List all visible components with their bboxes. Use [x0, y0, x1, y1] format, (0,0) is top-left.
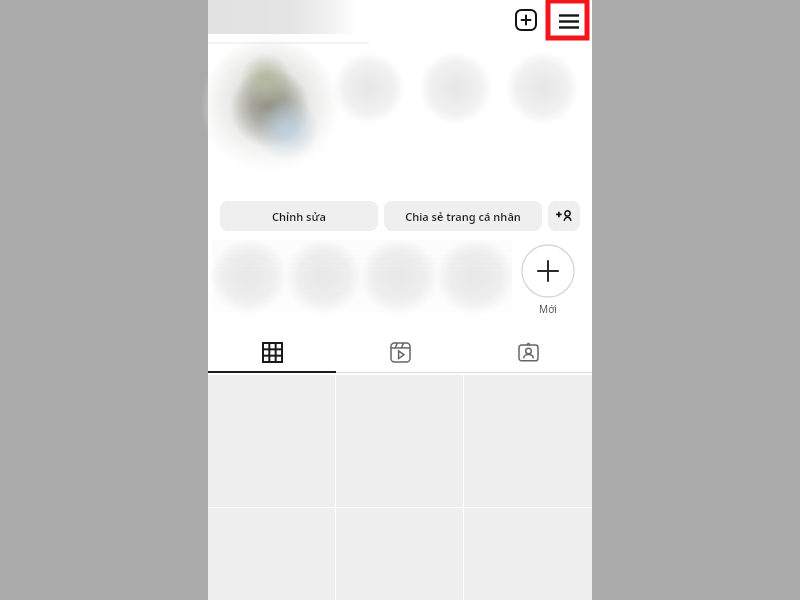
button[interactable]: Reels [336, 332, 464, 372]
staticText: Mới [512, 302, 584, 316]
button[interactable]: Chỉnh sửa [220, 201, 378, 231]
button[interactable]: Posts grid [208, 332, 336, 372]
button[interactable]: Chia sẻ trang cá nhân [384, 201, 542, 231]
button[interactable]: Discover people [548, 201, 580, 231]
button[interactable]: New post [511, 5, 541, 35]
button[interactable]: Mới [512, 244, 584, 316]
button[interactable]: Tagged [464, 332, 592, 372]
staticText: Chia sẻ trang cá nhân [405, 209, 521, 224]
button[interactable]: Menu [553, 5, 585, 37]
staticText: Chỉnh sửa [272, 209, 326, 224]
